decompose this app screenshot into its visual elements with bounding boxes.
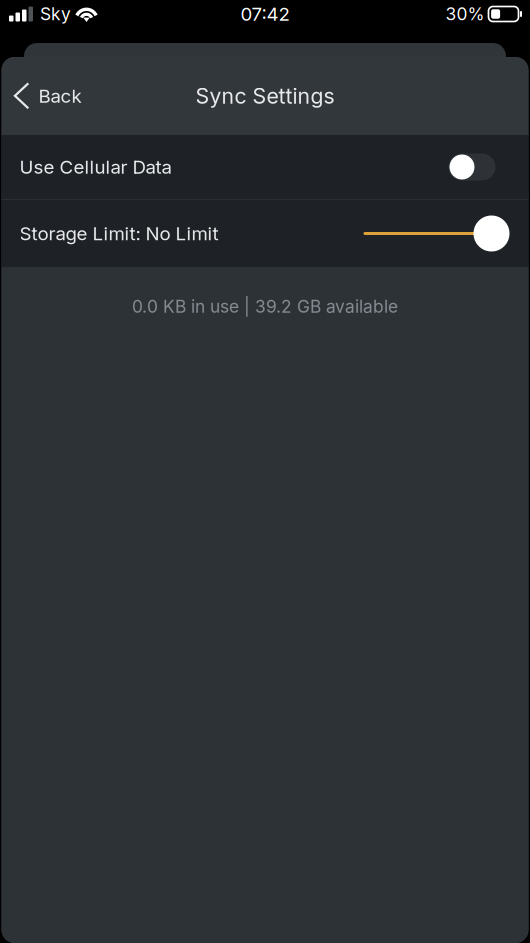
staticText: 0.0 KB in use | 39.2 GB available bbox=[132, 296, 398, 317]
staticText: Sky bbox=[40, 3, 71, 24]
button[interactable]: Back bbox=[1, 57, 97, 135]
button[interactable]: Storage Limit: No Limit bbox=[1, 200, 528, 267]
staticText: Sync Settings bbox=[195, 83, 334, 109]
staticText: 30% bbox=[445, 3, 484, 24]
staticText: Back bbox=[38, 85, 81, 107]
staticText: Storage Limit: No Limit bbox=[19, 222, 218, 245]
staticText: 07:42 bbox=[240, 3, 289, 25]
button[interactable]: Use Cellular Data bbox=[1, 135, 528, 199]
staticText: Use Cellular Data bbox=[19, 156, 171, 178]
